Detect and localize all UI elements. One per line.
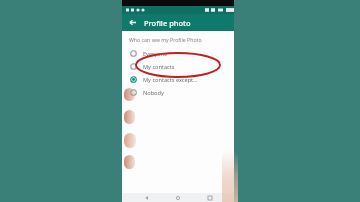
staticText: Who can see my Profile Photo (129, 36, 202, 43)
button[interactable]: My contacts (122, 60, 234, 73)
staticText: My contacts except... (143, 76, 198, 84)
button[interactable]: My contacts except... (122, 73, 234, 86)
staticText: Nobody (143, 89, 164, 97)
button[interactable]: Everyone (122, 47, 234, 60)
staticText: My contacts (143, 63, 175, 71)
button[interactable]: Back (140, 193, 154, 202)
button[interactable]: Nobody (122, 86, 234, 99)
button[interactable]: Recent apps (203, 193, 217, 202)
button[interactable]: Home (171, 193, 185, 202)
staticText: Profile photo (144, 18, 191, 28)
button[interactable]: Back (127, 17, 138, 28)
staticText: Everyone (143, 50, 168, 58)
